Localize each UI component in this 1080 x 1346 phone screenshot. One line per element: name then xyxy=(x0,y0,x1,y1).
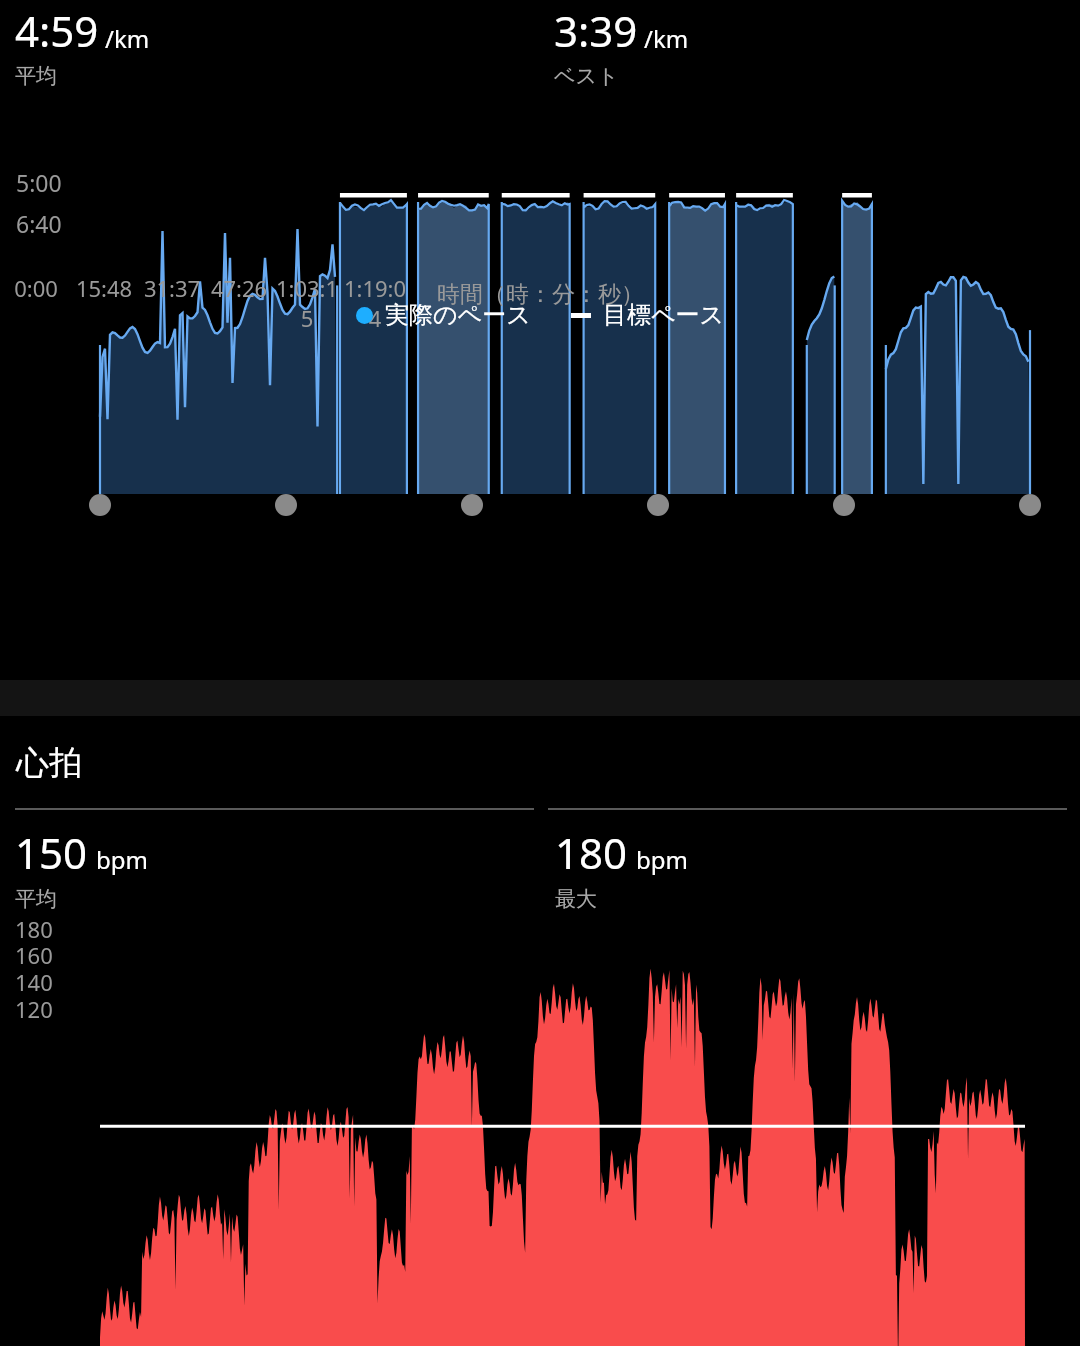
staticText: 15:48 xyxy=(72,273,136,303)
staticText: 180 xyxy=(555,824,628,881)
staticText: 0:00 xyxy=(4,273,68,303)
button[interactable]: 4:59 xyxy=(0,0,540,89)
button[interactable]: 目標ペース xyxy=(569,300,727,330)
staticText: 1:19:04 xyxy=(343,273,407,333)
button[interactable]: 150 xyxy=(0,824,540,912)
staticText: /km xyxy=(644,22,689,55)
staticText: 47:26 xyxy=(207,273,271,303)
button[interactable]: 3:39 xyxy=(540,0,1080,89)
staticText: ベスト xyxy=(554,63,619,89)
staticText: 150 xyxy=(15,824,88,881)
staticText: 1:03:15 xyxy=(275,273,339,333)
staticText: 180 xyxy=(15,914,53,944)
staticText: 120 xyxy=(15,994,53,1024)
staticText: bpm xyxy=(96,843,148,876)
button[interactable]: 実際のペース xyxy=(354,300,533,330)
button[interactable]: 180 xyxy=(540,824,1080,912)
staticText: 6:40 xyxy=(16,208,62,239)
staticText: 心拍 xyxy=(16,742,82,784)
staticText: 平均 xyxy=(15,63,57,89)
staticText: 4:59 xyxy=(15,2,99,59)
staticText: /km xyxy=(105,22,150,55)
staticText: 160 xyxy=(15,940,53,970)
staticText: 時間（時：分：秒） xyxy=(437,280,644,309)
staticText: 3:39 xyxy=(554,2,638,59)
staticText: 最大 xyxy=(555,886,597,912)
staticText: 140 xyxy=(15,967,53,997)
staticText: 目標ペース xyxy=(603,300,725,330)
staticText: bpm xyxy=(636,843,688,876)
staticText: 5:00 xyxy=(16,167,62,198)
staticText: 平均 xyxy=(15,886,57,912)
staticText: 31:37 xyxy=(140,273,204,303)
staticText: 実際のペース xyxy=(385,300,531,330)
